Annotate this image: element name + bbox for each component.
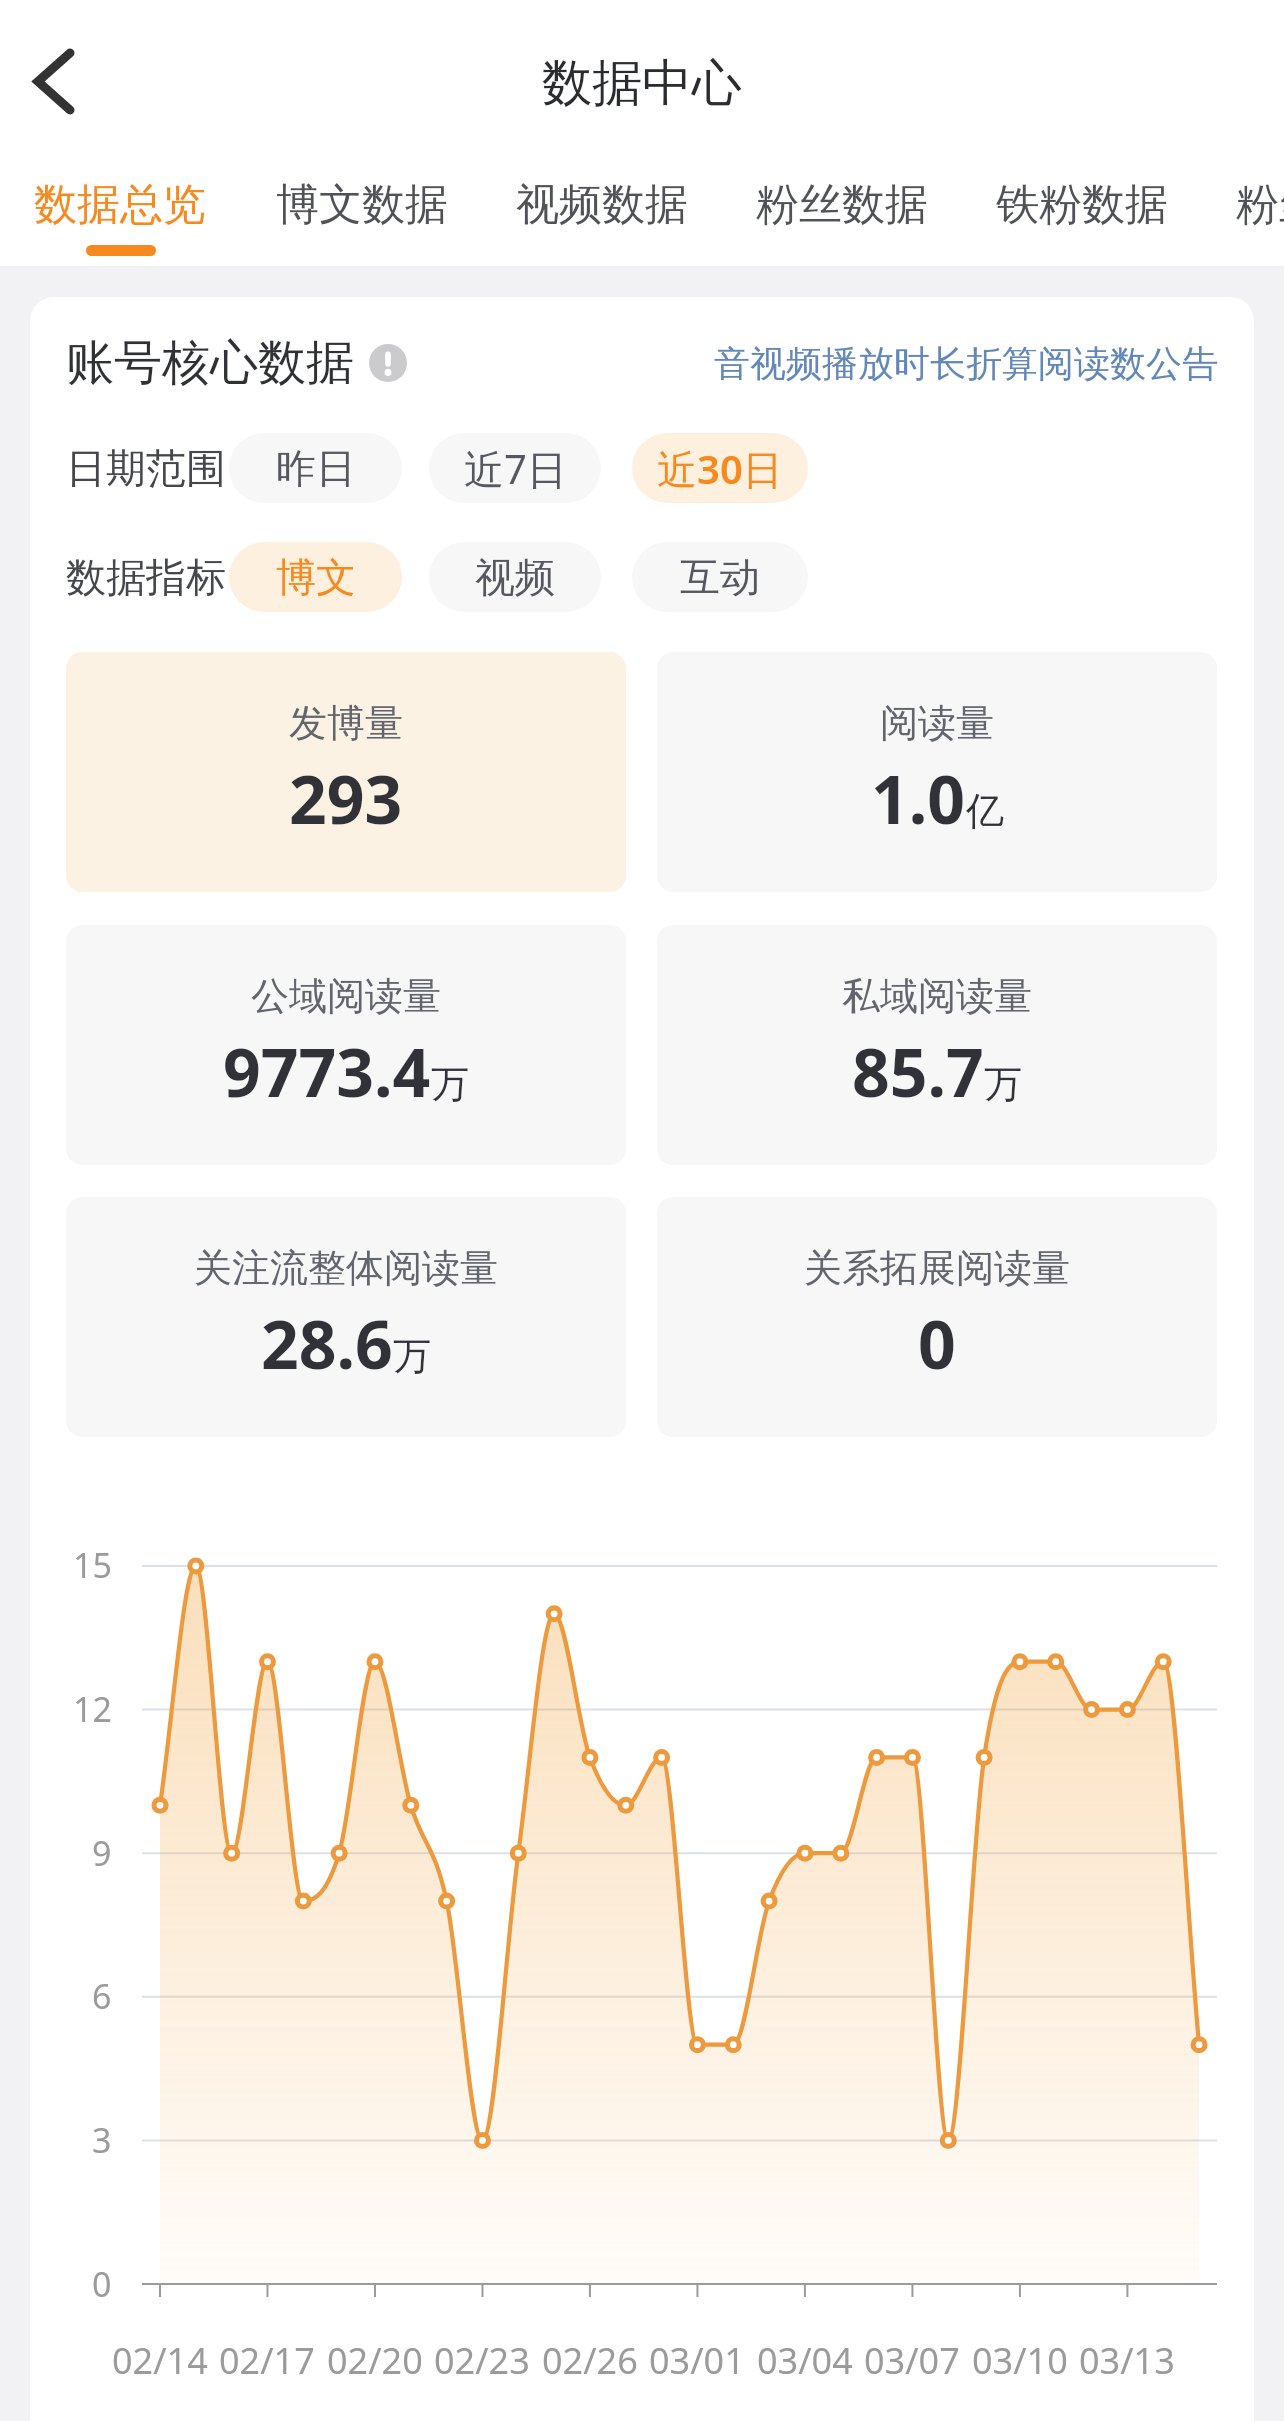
button[interactable]: 近7日 <box>429 433 601 503</box>
staticText: 02/23 <box>434 2336 530 2385</box>
staticText: 03/10 <box>972 2336 1068 2385</box>
staticText: 9773.4 <box>223 1026 431 1116</box>
staticText: 亿 <box>966 787 1004 835</box>
staticText: 02/17 <box>219 2336 315 2385</box>
staticText: 02/20 <box>327 2336 423 2385</box>
staticText: 粉丝数据 <box>756 178 928 232</box>
staticText: 铁粉数据 <box>996 178 1168 232</box>
button[interactable]: 视频数据 <box>515 170 689 240</box>
staticText: 视频 <box>475 552 555 602</box>
staticText: 数据指标 <box>66 552 226 602</box>
staticText: 昨日 <box>276 443 356 493</box>
button[interactable]: 博文数据 <box>275 170 449 240</box>
staticText: 3 <box>92 2117 112 2163</box>
button[interactable]: 公域阅读量 <box>66 925 626 1165</box>
staticText: 0 <box>92 2261 112 2307</box>
button[interactable]: 互动 <box>632 542 808 612</box>
button[interactable]: 铁粉数据 <box>995 170 1169 240</box>
staticText: 私域阅读量 <box>842 972 1032 1020</box>
staticText: 85.7 <box>852 1026 984 1116</box>
staticText: 03/01 <box>649 2336 745 2385</box>
staticText: 粉丝趋势 <box>1236 178 1284 232</box>
staticText: 互动 <box>680 552 760 602</box>
staticText: 02/14 <box>112 2336 208 2385</box>
button[interactable]: 关注流整体阅读量 <box>66 1197 626 1437</box>
staticText: 近30日 <box>657 441 783 496</box>
button[interactable]: 音视频播放时长折算阅读数公告 <box>700 334 1218 392</box>
staticText: 12 <box>73 1686 112 1732</box>
staticText: 日期范围 <box>66 443 226 493</box>
button[interactable]: 私域阅读量 <box>657 925 1217 1165</box>
staticText: 293 <box>289 753 403 843</box>
staticText: 0 <box>918 1298 956 1388</box>
button[interactable]: 昨日 <box>229 433 402 503</box>
staticText: 阅读量 <box>880 699 994 747</box>
button[interactable]: 博文 <box>229 542 402 612</box>
staticText: 视频数据 <box>516 178 688 232</box>
button[interactable]: 粉丝数据 <box>755 170 929 240</box>
staticText: 6 <box>92 1973 112 2019</box>
staticText: 公域阅读量 <box>251 972 441 1020</box>
button[interactable]: 关系拓展阅读量 <box>657 1197 1217 1437</box>
staticText: 近7日 <box>464 441 567 496</box>
button[interactable]: 数据总览 <box>33 170 207 240</box>
staticText: 03/07 <box>864 2336 960 2385</box>
staticText: 03/13 <box>1079 2336 1175 2385</box>
staticText: 15 <box>73 1542 112 1588</box>
staticText: 数据中心 <box>542 52 742 115</box>
staticText: 万 <box>984 1060 1022 1108</box>
button[interactable]: 近30日 <box>632 433 808 503</box>
staticText: 万 <box>431 1060 469 1108</box>
staticText: 账号核心数据 <box>66 333 354 393</box>
staticText: 万 <box>393 1332 431 1380</box>
staticText: 28.6 <box>261 1298 393 1388</box>
staticText: 数据总览 <box>34 178 206 232</box>
staticText: 03/04 <box>757 2336 853 2385</box>
staticText: 9 <box>92 1830 112 1876</box>
staticText: 博文 <box>276 552 356 602</box>
button[interactable] <box>20 40 90 120</box>
staticText: 关系拓展阅读量 <box>804 1244 1070 1292</box>
button[interactable]: 发博量 <box>66 652 626 892</box>
staticText: 博文数据 <box>276 178 448 232</box>
button[interactable]: 视频 <box>429 542 601 612</box>
staticText: 02/26 <box>542 2336 638 2385</box>
staticText: 1.0 <box>871 753 966 843</box>
staticText: 音视频播放时长折算阅读数公告 <box>714 341 1218 386</box>
button[interactable]: 粉丝趋势 <box>1235 170 1284 240</box>
staticText: 发博量 <box>289 699 403 747</box>
button[interactable]: 阅读量 <box>657 652 1217 892</box>
staticText: 关注流整体阅读量 <box>194 1244 498 1292</box>
